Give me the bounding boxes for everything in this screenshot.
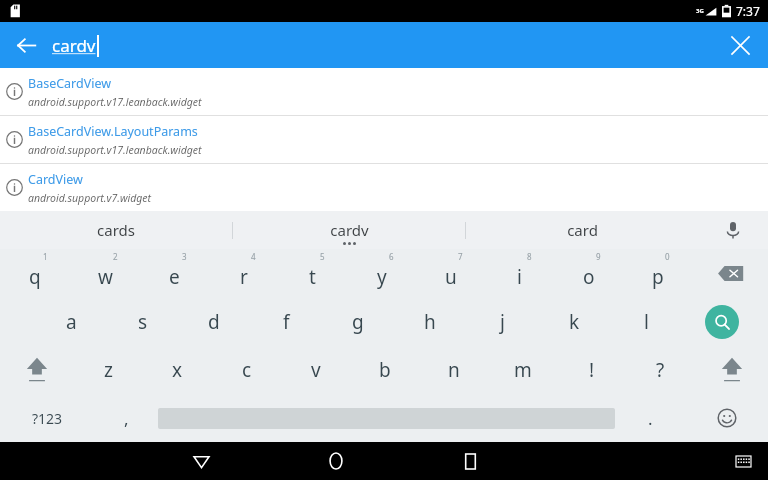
staticText: 7:37 xyxy=(736,3,760,19)
button[interactable]: cards xyxy=(0,211,232,249)
staticText: v xyxy=(311,357,321,383)
staticText: 8 xyxy=(527,251,532,262)
button[interactable]: 0 xyxy=(623,249,692,298)
staticText: p xyxy=(652,264,664,290)
button[interactable]: 4 xyxy=(209,249,278,298)
button[interactable]: n xyxy=(419,346,488,394)
button[interactable]: BaseCardView.LayoutParams xyxy=(0,116,768,163)
staticText: cards xyxy=(97,220,135,240)
staticText: g xyxy=(352,309,364,335)
staticText: android.support.v17.leanback.widget xyxy=(28,143,202,157)
staticText: z xyxy=(104,357,113,383)
button[interactable]: cardv xyxy=(233,211,465,249)
button[interactable]: , xyxy=(94,394,158,442)
staticText: ! xyxy=(589,357,595,383)
button[interactable]: Space xyxy=(158,394,615,442)
button[interactable]: x xyxy=(143,346,212,394)
staticText: i xyxy=(517,264,522,290)
staticText: android.support.v7.widget xyxy=(28,191,152,205)
staticText: n xyxy=(448,357,460,383)
button[interactable]: h xyxy=(394,298,466,346)
button[interactable]: Clear search xyxy=(720,25,760,65)
button[interactable]: v xyxy=(281,346,350,394)
button[interactable]: BaseCardView xyxy=(0,68,768,115)
button[interactable]: Emoji xyxy=(686,394,768,442)
staticText: f xyxy=(283,309,290,335)
staticText: BaseCardView.LayoutParams xyxy=(28,123,198,140)
staticText: CardView xyxy=(28,171,83,188)
staticText: y xyxy=(377,264,387,290)
staticText: r xyxy=(240,264,248,290)
button[interactable]: . xyxy=(615,394,686,442)
staticText: c xyxy=(242,357,252,383)
button[interactable]: Back xyxy=(6,25,46,65)
button[interactable]: Voice input xyxy=(698,211,768,249)
button[interactable]: Shift xyxy=(0,346,74,394)
button[interactable]: 1 xyxy=(0,249,70,298)
button[interactable]: 7 xyxy=(416,249,485,298)
button[interactable]: m xyxy=(488,346,557,394)
button[interactable]: a xyxy=(36,298,107,346)
staticText: a xyxy=(66,309,77,335)
staticText: q xyxy=(29,264,41,290)
staticText: 0 xyxy=(665,251,670,262)
staticText: k xyxy=(569,309,580,335)
staticText: 7 xyxy=(458,251,463,262)
button[interactable]: 5 xyxy=(278,249,347,298)
staticText: u xyxy=(445,264,457,290)
staticText: 4 xyxy=(251,251,256,262)
staticText: h xyxy=(424,309,436,335)
button[interactable]: ! xyxy=(557,346,626,394)
button[interactable]: Backspace xyxy=(692,249,768,298)
staticText: b xyxy=(379,357,391,383)
staticText: m xyxy=(514,357,532,383)
staticText: l xyxy=(644,309,649,335)
button[interactable]: j xyxy=(466,298,538,346)
staticText: s xyxy=(138,309,148,335)
staticText: card xyxy=(567,220,598,240)
staticText: 3 xyxy=(182,251,187,262)
staticText: x xyxy=(172,357,183,383)
button[interactable]: ? xyxy=(626,346,695,394)
staticText: BaseCardView xyxy=(28,75,112,92)
button[interactable]: ?123 xyxy=(0,394,94,442)
button[interactable]: f xyxy=(250,298,322,346)
button[interactable]: b xyxy=(350,346,419,394)
button[interactable]: Back xyxy=(134,442,268,480)
staticText: android.support.v17.leanback.widget xyxy=(28,95,202,109)
staticText: e xyxy=(169,264,180,290)
button[interactable]: 8 xyxy=(485,249,554,298)
button[interactable]: s xyxy=(107,298,178,346)
button[interactable]: Hide keyboard xyxy=(720,442,766,480)
staticText: cardv xyxy=(330,220,369,240)
button[interactable]: g xyxy=(322,298,394,346)
staticText: , xyxy=(124,407,129,430)
button[interactable]: d xyxy=(178,298,250,346)
staticText: ? xyxy=(656,357,665,383)
staticText: 1 xyxy=(43,251,48,262)
button[interactable]: Search xyxy=(682,298,761,346)
button[interactable]: CardView xyxy=(0,164,768,211)
button[interactable]: c xyxy=(212,346,281,394)
button[interactable]: 2 xyxy=(70,249,140,298)
button[interactable]: Home xyxy=(268,442,403,480)
staticText: . xyxy=(648,407,653,430)
button[interactable]: 3 xyxy=(140,249,209,298)
staticText: 3G xyxy=(696,7,704,15)
staticText: t xyxy=(309,264,316,290)
button[interactable]: 9 xyxy=(554,249,623,298)
button[interactable]: z xyxy=(74,346,143,394)
staticText: 2 xyxy=(113,251,118,262)
button[interactable]: card xyxy=(466,211,698,249)
button[interactable]: Recent apps xyxy=(403,442,538,480)
staticText: ?123 xyxy=(32,409,63,428)
button[interactable]: k xyxy=(538,298,610,346)
staticText: cardv xyxy=(52,34,96,57)
staticText: 5 xyxy=(320,251,325,262)
staticText: o xyxy=(583,264,595,290)
staticText: w xyxy=(98,264,113,290)
button[interactable]: Shift xyxy=(695,346,768,394)
button[interactable]: 6 xyxy=(347,249,416,298)
staticText: d xyxy=(208,309,220,335)
button[interactable]: l xyxy=(610,298,682,346)
